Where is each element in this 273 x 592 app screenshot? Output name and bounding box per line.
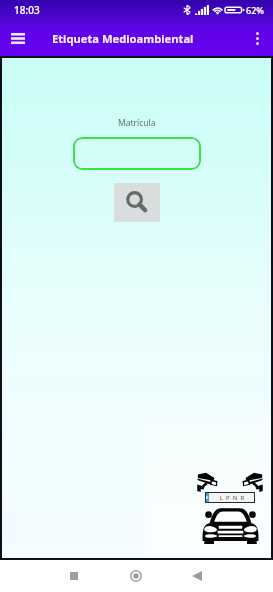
staticText: 62% [246, 4, 264, 16]
button[interactable] [73, 137, 201, 170]
staticText: 18:03 [14, 3, 40, 17]
button[interactable]: More options [241, 20, 273, 56]
button[interactable]: Back [183, 562, 211, 590]
button[interactable]: Search [114, 183, 160, 222]
staticText: Matrícula [118, 117, 156, 129]
staticText: Etiqueta Medioambiental [52, 31, 194, 46]
button[interactable]: Recent apps [60, 562, 88, 590]
button[interactable]: Home [122, 562, 150, 590]
button[interactable]: Open navigation menu [0, 20, 36, 56]
staticText: E [206, 495, 209, 500]
staticText: L P N R [209, 494, 255, 502]
